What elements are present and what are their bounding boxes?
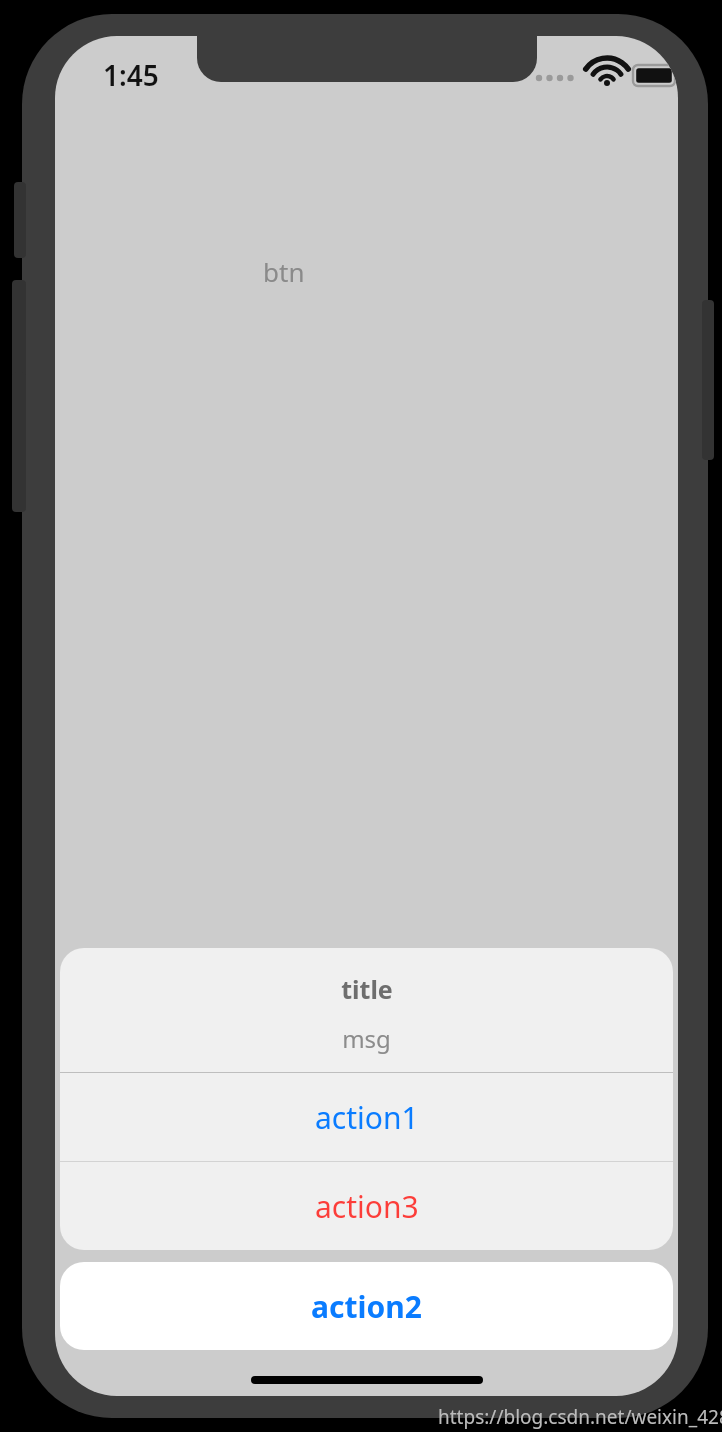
button[interactable]: action3: [60, 1162, 673, 1250]
button[interactable]: btn: [255, 248, 313, 295]
other: Status icons: [533, 58, 678, 92]
staticText: action1: [315, 1097, 419, 1138]
staticText: title: [341, 972, 393, 1006]
staticText: action2: [311, 1286, 422, 1327]
button[interactable]: action1: [60, 1073, 673, 1161]
button[interactable]: action2: [60, 1262, 673, 1350]
staticText: https://blog.csdn.net/weixin_42818402: [438, 1404, 722, 1430]
staticText: 1:45: [103, 56, 159, 94]
staticText: action3: [315, 1186, 419, 1227]
staticText: msg: [342, 1022, 391, 1055]
